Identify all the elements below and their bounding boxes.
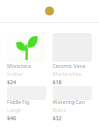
staticText: $24 [7, 78, 16, 86]
staticText: Matte white [52, 70, 81, 78]
button[interactable]: Monstera [7, 33, 46, 84]
button[interactable]: Home [0, 0, 99, 22]
staticText: Fiddle Fig [7, 98, 29, 105]
staticText: Large [7, 106, 21, 114]
button[interactable]: Fiddle Fig [7, 86, 46, 118]
staticText: Watering Can [52, 98, 84, 105]
button[interactable]: Watering Can [52, 86, 92, 118]
staticText: Brass [52, 106, 66, 114]
staticText: $46 [7, 114, 16, 122]
staticText: Monstera [7, 62, 31, 69]
staticText: Indoor [7, 70, 23, 78]
staticText: Ceramic Vase [52, 62, 85, 69]
button[interactable]: Ceramic Vase [52, 33, 92, 84]
staticText: $32 [52, 114, 61, 122]
staticText: $18 [52, 78, 61, 86]
